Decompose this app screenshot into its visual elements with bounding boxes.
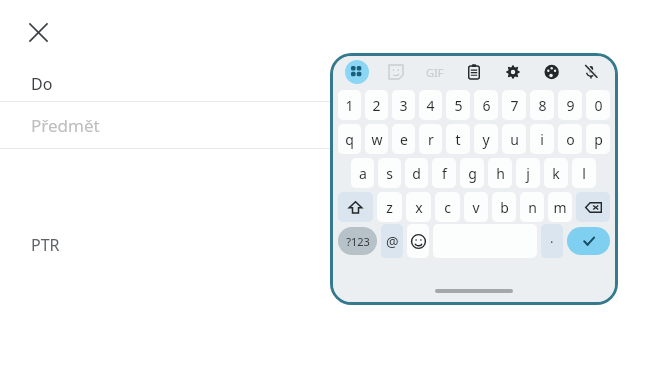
button[interactable]: Enter	[567, 227, 610, 255]
staticText: z	[386, 198, 393, 217]
button[interactable]: q	[338, 124, 361, 154]
staticText: n	[528, 198, 537, 217]
staticText: @	[386, 232, 399, 251]
staticText: Předmět	[31, 114, 100, 137]
button[interactable]: Backspace	[576, 192, 610, 222]
staticText: 2	[372, 96, 381, 115]
button[interactable]: 1	[338, 90, 361, 120]
button[interactable]: Clipboard	[454, 56, 493, 88]
button[interactable]: u	[502, 124, 526, 154]
staticText: 9	[566, 96, 575, 115]
staticText: PTR	[31, 234, 60, 256]
staticText: 5	[454, 96, 463, 115]
button[interactable]: 0	[586, 90, 610, 120]
button[interactable]: h	[488, 158, 512, 188]
button[interactable]: Voice input off	[571, 56, 610, 88]
button[interactable]: z	[377, 192, 402, 222]
staticText: Do	[31, 73, 53, 95]
staticText: c	[444, 198, 451, 217]
button[interactable]: c	[435, 192, 460, 222]
button[interactable]: 9	[558, 90, 582, 120]
staticText: 6	[482, 96, 491, 115]
staticText: 8	[538, 96, 547, 115]
staticText: l	[582, 164, 586, 183]
button[interactable]: GIF	[415, 56, 454, 88]
button[interactable]: t	[446, 124, 470, 154]
button[interactable]: w	[365, 124, 388, 154]
button[interactable]: v	[464, 192, 488, 222]
button[interactable]: k	[544, 158, 568, 188]
button[interactable]: Close	[20, 14, 56, 50]
staticText: 1	[345, 96, 354, 115]
staticText: k	[552, 164, 560, 183]
button[interactable]: j	[516, 158, 540, 188]
staticText: .	[550, 229, 554, 247]
staticText: e	[400, 130, 408, 149]
staticText: x	[415, 198, 423, 217]
staticText: 7	[510, 96, 519, 115]
button[interactable]: e	[392, 124, 415, 154]
button[interactable]: ?123	[338, 227, 377, 255]
button[interactable]: Stickers	[376, 56, 415, 88]
button[interactable]: 4	[419, 90, 442, 120]
staticText: m	[553, 198, 567, 217]
button[interactable]: f	[432, 158, 456, 188]
button[interactable]: 7	[502, 90, 526, 120]
button[interactable]: l	[572, 158, 596, 188]
staticText: a	[359, 164, 367, 183]
staticText: f	[442, 164, 447, 183]
staticText: v	[472, 198, 480, 217]
button[interactable]: Shift	[338, 192, 373, 222]
button[interactable]: Předmět	[0, 102, 331, 148]
staticText: g	[468, 164, 477, 183]
button[interactable]: 5	[446, 90, 470, 120]
staticText: 3	[399, 96, 408, 115]
staticText: y	[482, 130, 490, 149]
staticText: u	[510, 130, 519, 149]
button[interactable]: o	[558, 124, 582, 154]
button[interactable]: n	[520, 192, 544, 222]
button[interactable]: 2	[365, 90, 388, 120]
button[interactable]: i	[530, 124, 554, 154]
button[interactable]: d	[405, 158, 428, 188]
staticText: p	[594, 130, 603, 149]
staticText: d	[412, 164, 421, 183]
button[interactable]: Settings	[493, 56, 532, 88]
button[interactable]: p	[586, 124, 610, 154]
staticText: b	[500, 198, 509, 217]
button[interactable]: y	[474, 124, 498, 154]
staticText: 4	[426, 96, 435, 115]
staticText: w	[371, 130, 383, 149]
button[interactable]: x	[406, 192, 431, 222]
button[interactable]: 8	[530, 90, 554, 120]
button[interactable]: 3	[392, 90, 415, 120]
staticText: r	[428, 130, 434, 149]
staticText: q	[345, 130, 354, 149]
staticText: 0	[594, 96, 603, 115]
button[interactable]: Do	[0, 67, 331, 101]
staticText: t	[455, 130, 461, 149]
button[interactable]: a	[351, 158, 374, 188]
button[interactable]: r	[419, 124, 442, 154]
staticText: o	[566, 130, 575, 149]
button[interactable]: 6	[474, 90, 498, 120]
button[interactable]: b	[492, 192, 516, 222]
button[interactable]: Theme	[532, 56, 571, 88]
staticText: ?123	[346, 234, 370, 249]
button[interactable]: s	[378, 158, 401, 188]
staticText: h	[496, 164, 505, 183]
button[interactable]: g	[460, 158, 484, 188]
button[interactable]: Emoji	[407, 224, 429, 258]
staticText: s	[386, 164, 393, 183]
staticText: i	[540, 130, 544, 149]
button[interactable]: @	[381, 224, 403, 258]
button[interactable]: m	[548, 192, 572, 222]
staticText: GIF	[426, 65, 444, 80]
staticText: j	[526, 164, 530, 183]
button[interactable]: Keyboard switcher	[338, 56, 376, 88]
button[interactable]: .	[541, 224, 563, 258]
